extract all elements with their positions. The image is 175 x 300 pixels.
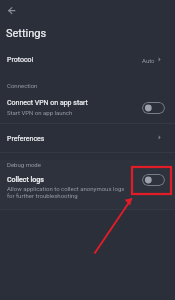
staticText: Collect logs	[7, 176, 44, 184]
button[interactable]: Protocol	[0, 48, 175, 70]
button[interactable]: Toggle	[142, 102, 165, 114]
staticText: Protocol	[7, 56, 34, 64]
staticText: Connect VPN on app start	[7, 99, 88, 107]
staticText: Connection	[7, 82, 38, 89]
button[interactable]: Preferences	[0, 124, 175, 152]
staticText: Debug mode	[7, 161, 41, 168]
staticText: Start VPN on app launch	[7, 109, 73, 116]
staticText: Allow application to collect anonymous l…	[7, 185, 131, 199]
staticText: Auto	[142, 57, 155, 64]
staticText: Settings	[6, 27, 47, 40]
button[interactable]: Collect logs	[0, 174, 175, 209]
staticText: Preferences	[7, 135, 45, 143]
button[interactable]: Back	[2, 3, 18, 19]
button[interactable]: Toggle	[142, 174, 165, 186]
button[interactable]: Connect VPN on app start	[0, 95, 175, 122]
